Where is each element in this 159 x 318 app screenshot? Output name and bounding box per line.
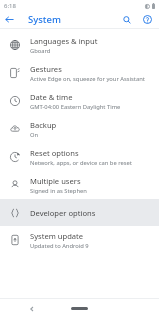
- staticText: Gboard: [30, 47, 51, 55]
- staticText: Date & time: [30, 92, 73, 102]
- staticText: Updated to Android 9: [30, 242, 89, 250]
- button[interactable]: Back: [28, 305, 36, 313]
- button[interactable]: Languages & input: [0, 31, 159, 59]
- staticText: Backup: [30, 120, 57, 130]
- staticText: 6:18: [4, 2, 16, 10]
- button[interactable]: System update: [0, 226, 159, 254]
- button[interactable]: Multiple users: [0, 171, 159, 199]
- button[interactable]: Gestures: [0, 59, 159, 87]
- button[interactable]: Backup: [0, 115, 159, 143]
- button[interactable]: Search: [118, 11, 136, 28]
- staticText: Gestures: [30, 64, 62, 74]
- staticText: Multiple users: [30, 176, 81, 186]
- staticText: Languages & input: [30, 36, 98, 46]
- staticText: Developer options: [30, 208, 96, 218]
- staticText: Active Edge on, squeeze for your Assista…: [30, 75, 145, 83]
- button[interactable]: Back: [0, 11, 18, 28]
- staticText: GMT-04:00 Eastern Daylight Time: [30, 103, 121, 111]
- staticText: System update: [30, 231, 84, 241]
- staticText: System: [28, 13, 61, 26]
- staticText: Signed in as Stephen: [30, 187, 87, 195]
- button[interactable]: Help: [138, 11, 156, 28]
- button[interactable]: Date & time: [0, 87, 159, 115]
- button[interactable]: Reset options: [0, 143, 159, 171]
- button[interactable]: Home: [71, 307, 88, 310]
- staticText: On: [30, 131, 39, 139]
- staticText: Network, apps, or device can be reset: [30, 159, 132, 167]
- button[interactable]: Developer options: [0, 199, 159, 226]
- staticText: Reset options: [30, 148, 79, 158]
